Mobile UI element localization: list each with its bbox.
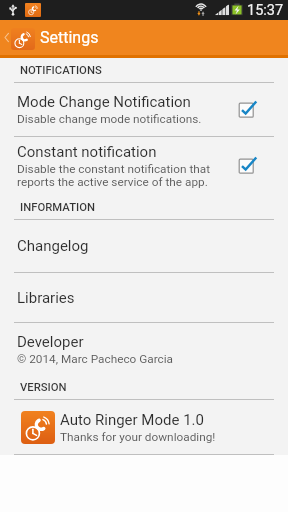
staticText: INFORMATION bbox=[20, 201, 96, 214]
button[interactable]: Libraries bbox=[0, 273, 288, 322]
staticText: Mode Change Notification bbox=[17, 93, 191, 111]
staticText: Changelog bbox=[17, 237, 89, 255]
staticText: 15:37 bbox=[247, 2, 284, 19]
staticText: Auto Ringer Mode 1.0 bbox=[60, 411, 204, 429]
staticText: NOTIFICATIONS bbox=[20, 64, 102, 77]
staticText: Settings bbox=[40, 28, 99, 47]
staticText: © 2014, Marc Pacheco Garcia bbox=[17, 352, 174, 366]
button[interactable]: Constant notification bbox=[0, 137, 288, 195]
staticText: Disable the constant notification that r… bbox=[17, 162, 211, 189]
staticText: VERSION bbox=[20, 381, 67, 394]
button[interactable]: Developer bbox=[0, 323, 288, 375]
staticText: Constant notification bbox=[17, 143, 157, 161]
button[interactable]: Auto Ringer Mode 1.0 bbox=[0, 400, 288, 454]
button[interactable]: Changelog bbox=[0, 220, 288, 272]
staticText: Disable change mode notifications. bbox=[17, 112, 202, 126]
staticText: Thanks for your downloading! bbox=[60, 430, 216, 444]
staticText: Developer bbox=[17, 333, 84, 351]
staticText: Libraries bbox=[17, 289, 75, 307]
button[interactable]: Mode Change Notification bbox=[0, 83, 288, 136]
button[interactable]: Navigate up bbox=[0, 20, 288, 55]
